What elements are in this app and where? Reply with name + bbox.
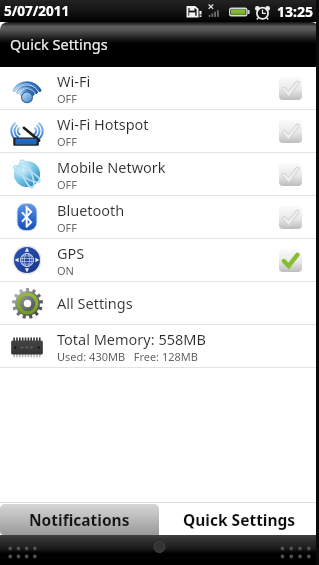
- button[interactable]: Wi-Fi: [0, 67, 319, 109]
- button[interactable]: All Settings: [0, 282, 319, 324]
- staticText: Mobile Network: [57, 157, 166, 177]
- button[interactable]: Off: [279, 77, 302, 100]
- staticText: Quick Settings: [10, 34, 108, 54]
- staticText: 13:25: [277, 2, 313, 21]
- button[interactable]: Wi-Fi Hotspot: [0, 110, 319, 152]
- staticText: Notifications: [29, 509, 130, 530]
- button[interactable]: Quick Settings: [159, 504, 319, 535]
- staticText: Wi-Fi Hotspot: [57, 114, 149, 134]
- staticText: OFF: [57, 91, 78, 106]
- staticText: Used: 430MB Free: 128MB: [57, 349, 198, 364]
- button[interactable]: Mobile Network: [0, 153, 319, 195]
- staticText: GPS: [57, 243, 85, 263]
- staticText: ON: [57, 263, 74, 278]
- staticText: OFF: [57, 177, 78, 192]
- staticText: All Settings: [57, 293, 133, 313]
- button[interactable]: Notifications: [0, 504, 159, 535]
- staticText: Bluetooth: [57, 200, 125, 220]
- staticText: 5/07/2011: [4, 2, 70, 20]
- button[interactable]: Off: [279, 206, 302, 229]
- button[interactable]: Off: [279, 120, 302, 143]
- staticText: OFF: [57, 134, 78, 149]
- staticText: Quick Settings: [183, 509, 296, 530]
- button[interactable]: Off: [279, 163, 302, 186]
- button[interactable]: On: [279, 249, 302, 272]
- button[interactable]: Bluetooth: [0, 196, 319, 238]
- staticText: OFF: [57, 220, 78, 235]
- staticText: Total Memory: 558MB: [57, 329, 206, 349]
- button[interactable]: GPS: [0, 239, 319, 281]
- staticText: Wi-Fi: [57, 71, 91, 91]
